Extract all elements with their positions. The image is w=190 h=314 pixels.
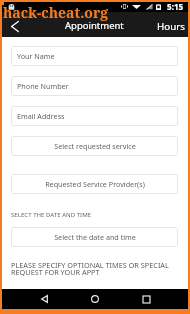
button[interactable]: Home [86, 290, 104, 308]
button[interactable]: Phone Number [11, 76, 178, 96]
staticText: Select requested service [54, 141, 136, 151]
staticText: PLEASE SPECIFY OPTIONAL TIMES OR SPECIAL… [11, 260, 169, 277]
staticText: Your Name [17, 51, 55, 61]
button[interactable]: Hours [151, 14, 188, 35]
button[interactable]: Select requested service [11, 136, 178, 156]
staticText: SELECT THE DATE AND TIME [11, 210, 92, 218]
button[interactable]: Requested Service Provider(s) [11, 174, 178, 194]
button[interactable]: Recents [137, 290, 155, 308]
staticText: Phone Number [17, 81, 69, 91]
button[interactable]: Email Address [11, 106, 178, 126]
button[interactable]: Your Name [11, 46, 178, 66]
staticText: hack-cheat.org [3, 3, 109, 22]
staticText: Hours [157, 20, 185, 33]
button[interactable]: Select the date and time [11, 227, 178, 247]
staticText: Requested Service Provider(s) [45, 179, 145, 189]
staticText: Appointment [65, 19, 124, 32]
staticText: Select the date and time [54, 232, 136, 242]
button[interactable]: Back [35, 290, 53, 308]
button[interactable]: Back [6, 17, 24, 35]
staticText: 5:15 [167, 1, 184, 11]
staticText: Email Address [17, 111, 65, 121]
